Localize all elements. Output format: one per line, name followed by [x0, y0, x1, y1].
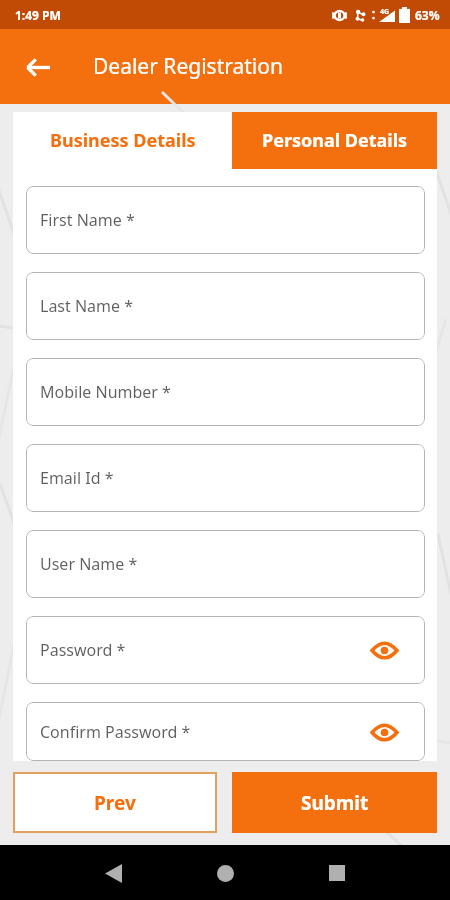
button[interactable]: Confirm Password * [26, 702, 425, 761]
staticText: User Name * [40, 553, 138, 575]
staticText: Last Name * [40, 295, 134, 317]
button[interactable]: Show password [369, 635, 399, 665]
staticText: 4G [380, 7, 390, 17]
staticText: Confirm Password * [40, 721, 191, 743]
staticText: First Name * [40, 209, 135, 231]
button[interactable]: User Name * [26, 530, 425, 598]
staticText: Password * [40, 639, 126, 661]
button[interactable]: Submit [232, 772, 437, 833]
staticText: Business Details [50, 128, 196, 153]
button[interactable]: First Name * [26, 186, 425, 254]
staticText: 1:49 PM [15, 7, 61, 23]
button[interactable]: Personal Details [232, 112, 437, 169]
button[interactable]: Email Id * [26, 444, 425, 512]
staticText: Mobile Number * [40, 381, 171, 403]
button[interactable]: Show password [369, 717, 399, 747]
button[interactable]: Recent apps [316, 852, 358, 894]
button[interactable]: Mobile Number * [26, 358, 425, 426]
button[interactable]: Last Name * [26, 272, 425, 340]
staticText: Personal Details [262, 128, 408, 153]
staticText: Dealer Registration [93, 52, 283, 81]
staticText: Submit [301, 790, 369, 816]
button[interactable]: Home [204, 852, 246, 894]
button[interactable]: Back [16, 45, 60, 89]
button[interactable]: Password * [26, 616, 425, 684]
staticText: Email Id * [40, 467, 114, 489]
button[interactable]: Back [92, 852, 134, 894]
staticText: Prev [94, 790, 136, 816]
button[interactable]: Business Details [13, 112, 232, 169]
button[interactable]: Prev [13, 772, 217, 833]
staticText: 63% [415, 7, 440, 23]
